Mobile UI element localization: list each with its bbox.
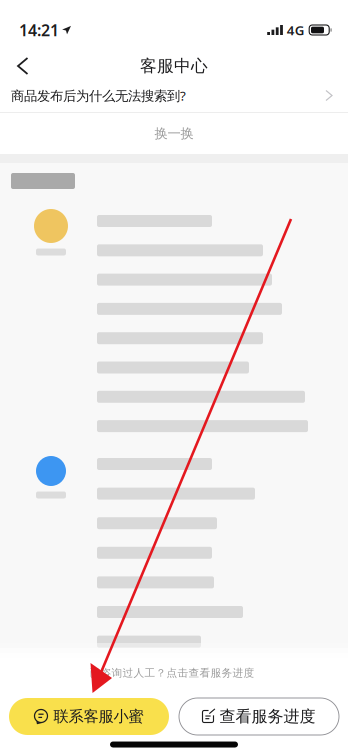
button[interactable]: 换一换 — [0, 113, 348, 154]
button[interactable]: 查看服务进度 — [179, 698, 339, 735]
staticText: 已咨询过人工？点击查看服务进度 — [89, 666, 254, 680]
button[interactable]: 已咨询过人工？点击查看服务进度 — [0, 658, 348, 688]
button[interactable]: Back — [0, 49, 41, 83]
staticText: 客服中心 — [140, 55, 208, 76]
staticText: 商品发布后为什么无法搜索到? — [11, 86, 186, 105]
staticText: 查看服务进度 — [219, 706, 315, 727]
staticText: 14:21 — [19, 19, 59, 41]
staticText: 联系客服小蜜 — [53, 707, 143, 726]
button[interactable]: 商品发布后为什么无法搜索到? — [0, 79, 348, 112]
staticText: 4G — [287, 21, 305, 39]
button[interactable]: 联系客服小蜜 — [9, 698, 169, 735]
staticText: 换一换 — [154, 125, 193, 142]
